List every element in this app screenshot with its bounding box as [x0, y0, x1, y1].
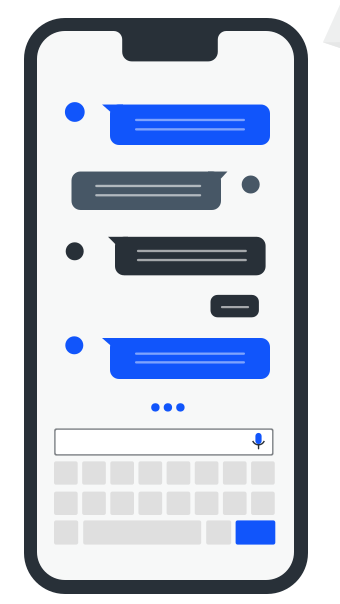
button[interactable]: Send: [0, 0, 340, 604]
button[interactable]: Key: [0, 0, 340, 604]
button[interactable]: Key: [0, 0, 340, 604]
button[interactable]: Key: [0, 0, 340, 604]
button[interactable]: Space key: [0, 0, 340, 604]
button[interactable]: Key: [0, 0, 340, 604]
button[interactable]: Key: [0, 0, 340, 604]
button[interactable]: Key: [0, 0, 340, 604]
button[interactable]: Key: [0, 0, 340, 604]
button[interactable]: Symbols key: [0, 0, 340, 604]
button[interactable]: Key: [0, 0, 340, 604]
button[interactable]: Key: [0, 0, 340, 604]
button[interactable]: Key: [0, 0, 340, 604]
button[interactable]: Key: [0, 0, 340, 604]
button[interactable]: Key: [0, 0, 340, 604]
button[interactable]: Message input field: [0, 0, 340, 604]
button[interactable]: Key: [0, 0, 340, 604]
button[interactable]: Key: [0, 0, 340, 604]
button[interactable]: Shift key: [0, 0, 340, 604]
button[interactable]: Key: [0, 0, 340, 604]
button[interactable]: Key: [0, 0, 340, 604]
